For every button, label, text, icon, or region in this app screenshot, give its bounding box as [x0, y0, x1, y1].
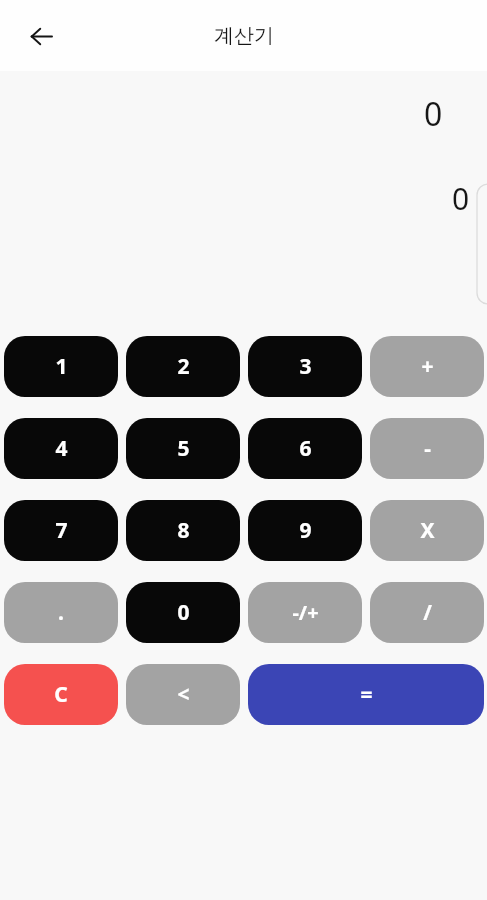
staticText: 계산기: [214, 23, 274, 48]
staticText: 9: [299, 516, 312, 545]
button[interactable]: 6: [248, 418, 362, 479]
staticText: 0: [177, 598, 190, 627]
button[interactable]: -: [370, 418, 484, 479]
button[interactable]: =: [248, 664, 484, 725]
button[interactable]: 2: [126, 336, 240, 397]
button[interactable]: 7: [4, 500, 118, 561]
button[interactable]: X: [370, 500, 484, 561]
staticText: C: [54, 680, 68, 709]
staticText: 1: [55, 352, 68, 381]
staticText: 0: [452, 178, 470, 219]
staticText: /: [423, 598, 432, 627]
staticText: .: [58, 598, 64, 627]
button[interactable]: +: [370, 336, 484, 397]
staticText: -: [424, 434, 431, 463]
staticText: 7: [55, 516, 68, 545]
button[interactable]: C: [4, 664, 118, 725]
button[interactable]: 1: [4, 336, 118, 397]
staticText: 4: [55, 434, 68, 463]
staticText: X: [420, 516, 435, 545]
button[interactable]: 0: [126, 582, 240, 643]
staticText: =: [360, 680, 373, 709]
staticText: 8: [177, 516, 190, 545]
staticText: 3: [299, 352, 312, 381]
staticText: 6: [299, 434, 312, 463]
button[interactable]: 3: [248, 336, 362, 397]
staticText: 0: [424, 92, 443, 136]
button[interactable]: -/+: [248, 582, 362, 643]
button[interactable]: /: [370, 582, 484, 643]
button[interactable]: 5: [126, 418, 240, 479]
staticText: 5: [177, 434, 190, 463]
button[interactable]: Back: [19, 14, 63, 58]
button[interactable]: 9: [248, 500, 362, 561]
staticText: +: [421, 352, 434, 381]
button[interactable]: <: [126, 664, 240, 725]
button[interactable]: 4: [4, 418, 118, 479]
staticText: -/+: [292, 599, 319, 626]
staticText: <: [177, 680, 190, 709]
button[interactable]: 8: [126, 500, 240, 561]
button[interactable]: .: [4, 582, 118, 643]
staticText: 2: [177, 352, 190, 381]
